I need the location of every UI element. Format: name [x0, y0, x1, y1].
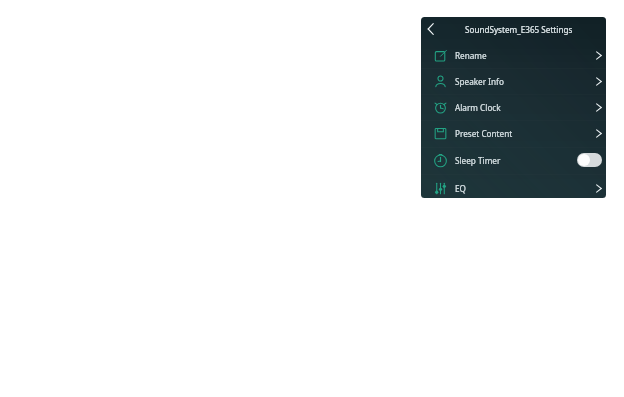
staticText: Speaker Info [455, 76, 504, 87]
staticText: Preset Content [455, 128, 513, 139]
button[interactable]: Preset Content [421, 120, 606, 147]
staticText: EQ [455, 183, 466, 194]
button[interactable]: Rename [421, 42, 606, 68]
staticText: Rename [455, 50, 487, 61]
staticText: SoundSystem_E365 Settings [465, 24, 573, 35]
button[interactable]: Sleep Timer [421, 147, 606, 175]
staticText: Alarm Clock [455, 102, 501, 113]
button[interactable]: Back [423, 21, 439, 37]
button[interactable]: Speaker Info [421, 68, 606, 94]
button[interactable]: EQ [421, 174, 606, 198]
button[interactable]: Sleep Timer toggle [577, 153, 602, 167]
button[interactable]: Alarm Clock [421, 94, 606, 120]
staticText: Sleep Timer [455, 155, 501, 166]
